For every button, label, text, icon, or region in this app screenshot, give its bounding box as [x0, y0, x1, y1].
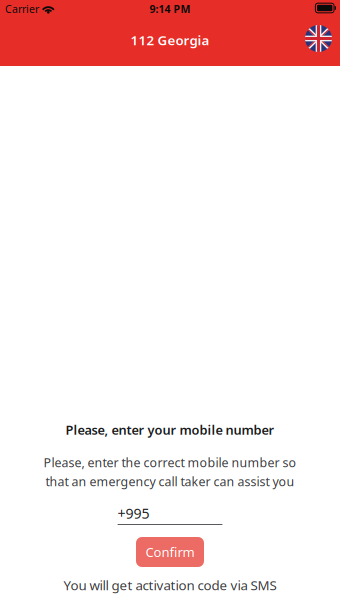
staticText: Please, enter your mobile number	[65, 421, 274, 438]
staticText: 112 Georgia	[130, 31, 209, 49]
staticText: You will get activation code via SMS	[63, 576, 276, 594]
staticText: Carrier	[5, 2, 39, 16]
staticText: 9:14 PM	[149, 2, 190, 16]
button[interactable]: Change language	[300, 20, 337, 57]
staticText: Confirm	[145, 543, 194, 561]
staticText: that an emergency call taker can assist …	[45, 473, 294, 490]
staticText: +995	[117, 504, 149, 523]
staticText: Please, enter the correct mobile number …	[43, 454, 296, 471]
button[interactable]: Confirm	[136, 537, 204, 567]
